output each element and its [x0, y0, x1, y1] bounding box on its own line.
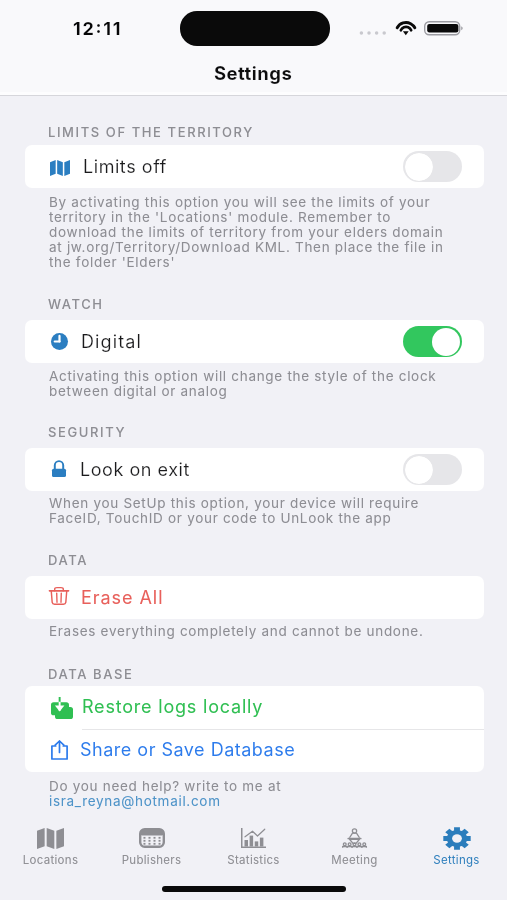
button[interactable]: Settings	[406, 813, 507, 873]
button[interactable]: Share or Save Database	[25, 729, 484, 772]
staticText: WATCH	[48, 296, 104, 312]
button[interactable]: Toggle on	[403, 326, 462, 357]
button[interactable]: Toggle off	[403, 454, 462, 485]
staticText: Erase All	[81, 587, 164, 609]
staticText: Publishers	[101, 853, 202, 867]
staticText: 12:11	[73, 18, 123, 40]
staticText: Digital	[81, 331, 142, 353]
staticText: Locations	[0, 853, 101, 867]
button[interactable]: Limits off	[25, 145, 484, 188]
staticText: Activating this option will change the s…	[49, 368, 437, 384]
staticText: the folder 'Elders'	[49, 254, 176, 270]
staticText: isra_reyna@hotmail.com	[49, 793, 221, 809]
button[interactable]: Toggle off	[403, 151, 462, 182]
staticText: LIMITS OF THE TERRITORY	[48, 124, 254, 140]
button[interactable]: Look on exit	[25, 448, 484, 491]
staticText: FaceID, TouchID or your code to UnLook t…	[49, 510, 392, 526]
staticText: Settings	[214, 62, 293, 84]
staticText: at jw.org/Territory/Download KML. Then p…	[49, 239, 444, 255]
button[interactable]: Locations	[0, 813, 101, 873]
staticText: Do you need help? write to me at	[49, 778, 282, 794]
staticText: download the limits of territory from yo…	[49, 224, 444, 240]
staticText: Settings	[406, 853, 507, 867]
staticText: Restore logs locally	[82, 696, 264, 718]
staticText: Erases everything completely and cannot …	[49, 623, 424, 639]
button[interactable]: Restore logs locally	[25, 686, 484, 729]
staticText: When you SetUp this option, your device …	[49, 495, 419, 511]
staticText: By activating this option you will see t…	[49, 194, 431, 210]
staticText: DATA BASE	[48, 666, 134, 682]
button[interactable]: Statistics	[203, 813, 304, 873]
staticText: Limits off	[83, 156, 167, 178]
staticText: between digital or analog	[49, 383, 228, 399]
staticText: territory in the 'Locations' module. Rem…	[49, 209, 391, 225]
staticText: Statistics	[203, 853, 304, 867]
button[interactable]: Meeting	[304, 813, 405, 873]
staticText: Meeting	[304, 853, 405, 867]
button[interactable]: Erase All	[25, 576, 484, 619]
staticText: SEGURITY	[48, 424, 127, 440]
staticText: Look on exit	[80, 459, 190, 481]
staticText: Share or Save Database	[80, 739, 296, 761]
button[interactable]: Publishers	[101, 813, 202, 873]
staticText: DATA	[48, 552, 88, 568]
button[interactable]: Digital	[25, 320, 484, 363]
